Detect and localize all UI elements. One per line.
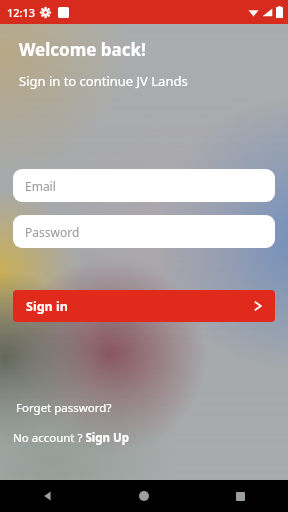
button[interactable]: Forget password? [0,398,118,418]
button[interactable]: Back [0,480,96,512]
staticText: No account ? Sign Up [13,430,129,446]
button[interactable]: Recent apps [192,480,288,512]
button[interactable]: Sign in [13,290,275,322]
button[interactable]: Password [13,215,275,248]
button[interactable]: Home [96,480,192,512]
staticText: Sign in to continue JV Lands [19,72,188,90]
staticText: Forget password? [16,400,112,416]
button[interactable]: No account ? Sign Up [0,428,135,448]
button[interactable]: Email [13,169,275,202]
staticText: 12:13 [7,5,36,20]
staticText: Sign in [26,298,68,315]
staticText: Welcome back! [19,38,146,61]
staticText: Password [25,224,80,240]
staticText: Email [25,178,56,194]
